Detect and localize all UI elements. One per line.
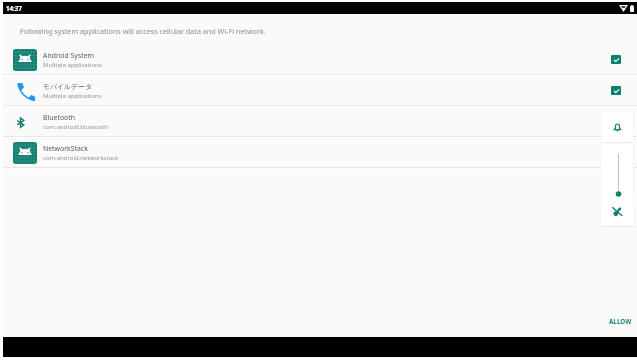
button[interactable]: Bluetooth (3, 107, 637, 138)
staticText: Android System (43, 51, 94, 60)
button[interactable]: Android System (3, 45, 637, 76)
button[interactable]: NetworkStack (3, 138, 637, 169)
staticText: com.android.networkstack (43, 154, 119, 162)
button[interactable]: Allow (611, 55, 621, 64)
staticText: 14:37 (6, 4, 22, 12)
staticText: Multiple applications (43, 92, 102, 100)
button[interactable]: Mute (610, 204, 624, 218)
staticText: com.android.bluetooth (43, 123, 108, 131)
staticText: Multiple applications (43, 61, 102, 69)
button[interactable]: Ringer mode (601, 113, 633, 142)
button[interactable]: モバイルデータ (3, 76, 637, 107)
button[interactable]: Allow (611, 86, 621, 95)
staticText: モバイルデータ (43, 82, 93, 91)
staticText: ALLOW (609, 317, 632, 326)
button[interactable]: ALLOW (606, 315, 635, 328)
staticText: NetworkStack (43, 144, 88, 153)
staticText: Bluetooth (43, 113, 75, 122)
staticText: Following system applications will acces… (20, 26, 266, 36)
